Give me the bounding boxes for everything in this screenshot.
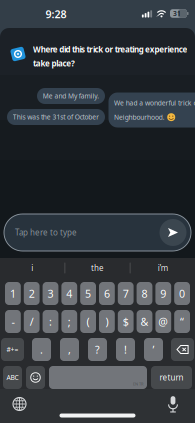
button[interactable]: We had a wonderful trick or treat (108, 92, 195, 127)
button[interactable]: 1 (5, 282, 21, 305)
staticText: i (31, 263, 33, 273)
staticText: #+= (6, 345, 18, 354)
button[interactable]: Send (159, 219, 186, 246)
staticText: 6 (104, 286, 110, 301)
staticText: Tap here to type (15, 227, 77, 238)
button[interactable]: , (60, 338, 79, 361)
staticText: 31 (173, 9, 181, 18)
staticText: Me and My family. (43, 92, 99, 100)
button[interactable]: Me and My family. (37, 88, 105, 104)
staticText: 0 (179, 286, 185, 301)
button[interactable]: ! (116, 338, 135, 361)
button[interactable]: ? (88, 338, 107, 361)
button[interactable]: ; (61, 310, 77, 333)
staticText: i’m (158, 263, 168, 273)
button[interactable]: 7 (118, 282, 134, 305)
button[interactable]: Emoji (26, 366, 45, 389)
button[interactable]: i’m (131, 258, 195, 278)
button[interactable]: Tap here to type (4, 214, 191, 251)
staticText: 4 (66, 286, 72, 301)
staticText: - (11, 314, 14, 329)
button[interactable]: 2 (24, 282, 40, 305)
staticText: EN TR (133, 381, 143, 386)
staticText: Where did this trick or treating experie… (33, 44, 187, 69)
staticText: ; (68, 314, 71, 329)
button[interactable]: Delete (171, 338, 194, 361)
button[interactable]: $ (118, 310, 134, 333)
button[interactable]: 0 (174, 282, 190, 305)
button[interactable]: 6 (99, 282, 115, 305)
button[interactable]: “ (174, 310, 190, 333)
button[interactable]: Next keyboard (12, 397, 26, 411)
staticText: the (91, 263, 104, 273)
button[interactable]: . (32, 338, 51, 361)
staticText: 9 (160, 286, 166, 301)
button[interactable]: the (65, 258, 130, 278)
staticText: @ (158, 314, 168, 329)
staticText: 9:28 (45, 7, 66, 21)
staticText: Neighbourhood. (114, 113, 165, 122)
button[interactable]: ( (80, 310, 96, 333)
staticText: ! (124, 342, 127, 357)
button[interactable]: ) (99, 310, 115, 333)
staticText: “ (180, 314, 184, 329)
staticText: We had a wonderful trick or treat (114, 98, 195, 107)
button[interactable]: & (137, 310, 152, 333)
button[interactable]: ’ (144, 338, 163, 361)
button[interactable]: 3 (43, 282, 58, 305)
staticText: $ (123, 314, 129, 329)
button[interactable]: return (151, 366, 192, 389)
staticText: ( (87, 314, 90, 329)
staticText: 5 (85, 286, 91, 301)
button[interactable]: ABC (3, 366, 22, 389)
button[interactable]: - (5, 310, 21, 333)
staticText: & (140, 314, 148, 329)
staticText: : (49, 314, 52, 329)
staticText: This was the 31st of October (13, 113, 99, 121)
staticText: ’ (152, 342, 154, 357)
staticText: ) (105, 314, 108, 329)
button[interactable]: : (43, 310, 58, 333)
staticText: 7 (123, 286, 129, 301)
staticText: 8 (141, 286, 147, 301)
button[interactable]: 4 (61, 282, 77, 305)
staticText: , (68, 342, 71, 357)
button[interactable]: #+= (1, 338, 24, 361)
button[interactable]: / (24, 310, 40, 333)
staticText: ABC (6, 373, 18, 382)
button[interactable]: Dictation (167, 395, 179, 412)
button[interactable]: 5 (80, 282, 96, 305)
staticText: / (30, 314, 34, 329)
staticText: 3 (47, 286, 53, 301)
button[interactable]: i (0, 258, 64, 278)
staticText: 1 (10, 286, 16, 301)
button[interactable]: 9 (155, 282, 171, 305)
button[interactable]: Space (49, 366, 147, 389)
button[interactable]: This was the 31st of October (7, 109, 105, 125)
button[interactable]: @ (155, 310, 171, 333)
staticText: . (40, 342, 43, 357)
staticText: 2 (29, 286, 35, 301)
staticText: ? (95, 342, 100, 357)
staticText: return (159, 372, 183, 383)
button[interactable]: 8 (137, 282, 152, 305)
